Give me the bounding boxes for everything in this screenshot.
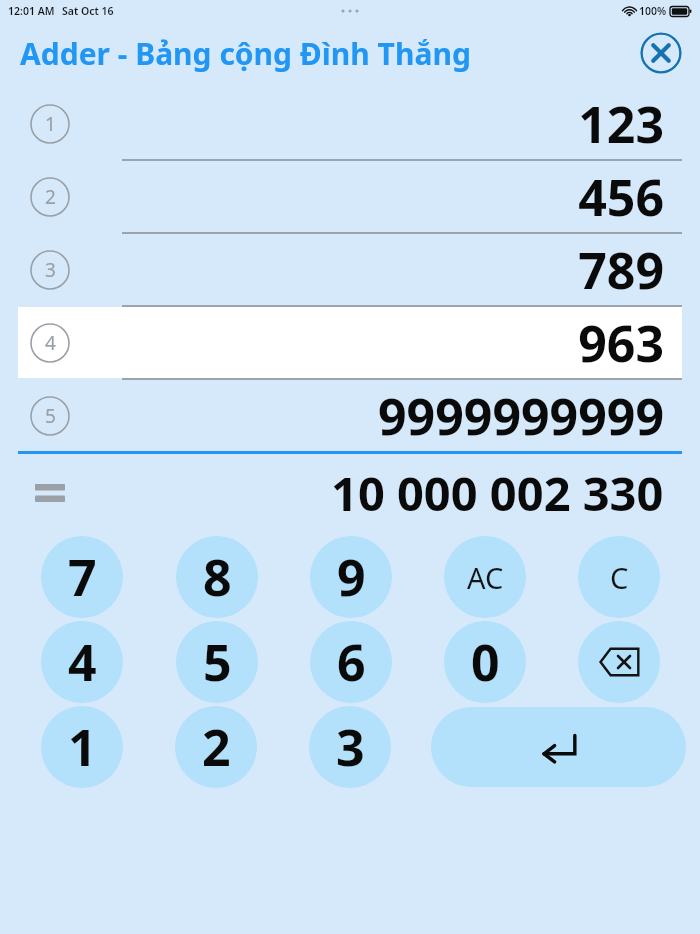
button[interactable]: 3 — [0, 234, 700, 305]
button[interactable]: 4 — [41, 621, 123, 703]
button[interactable]: 3 — [309, 706, 391, 788]
staticText: 4 — [45, 330, 56, 356]
staticText: 100% — [639, 4, 667, 18]
button[interactable]: 9 — [310, 536, 392, 618]
staticText: 3 — [336, 713, 365, 781]
staticText: 12:01 AM — [8, 4, 55, 18]
button[interactable]: 4 — [18, 307, 682, 378]
staticText: 3 — [45, 257, 56, 283]
staticText: 9999999999 — [378, 382, 664, 450]
staticText: 963 — [578, 309, 664, 377]
staticText: Adder - Bảng cộng Đình Thắng — [20, 33, 471, 74]
staticText: 8 — [203, 543, 232, 611]
staticText: AC — [467, 558, 504, 597]
staticText: 10 000 002 330 — [331, 461, 664, 525]
button[interactable]: Close — [640, 32, 682, 74]
staticText: 456 — [578, 163, 664, 231]
staticText: C — [610, 558, 629, 597]
button[interactable]: 10 000 002 330 — [0, 454, 700, 532]
button[interactable]: 5 — [176, 621, 258, 703]
staticText: 123 — [578, 90, 664, 158]
staticText: 0 — [471, 628, 500, 696]
staticText: 2 — [45, 184, 56, 210]
staticText: 9 — [337, 543, 366, 611]
button[interactable]: 5 — [0, 380, 700, 451]
button[interactable]: AC — [444, 536, 526, 618]
button[interactable]: Enter — [431, 707, 686, 787]
button[interactable]: 7 — [41, 536, 123, 618]
button[interactable]: 8 — [176, 536, 258, 618]
staticText: 5 — [203, 628, 232, 696]
staticText: 4 — [68, 628, 97, 696]
staticText: 1 — [45, 111, 56, 137]
staticText: 7 — [68, 543, 97, 611]
button[interactable]: 1 — [0, 88, 700, 159]
staticText: 789 — [578, 236, 664, 304]
button[interactable]: 0 — [444, 621, 526, 703]
button[interactable]: 6 — [310, 621, 392, 703]
staticText: 2 — [202, 713, 231, 781]
button[interactable]: 2 — [175, 706, 257, 788]
button[interactable]: 2 — [0, 161, 700, 232]
button[interactable]: C — [578, 536, 660, 618]
staticText: 6 — [337, 628, 366, 696]
button[interactable]: Backspace — [578, 621, 660, 703]
staticText: 1 — [68, 713, 97, 781]
staticText: 5 — [45, 403, 56, 429]
button[interactable]: 1 — [41, 706, 123, 788]
staticText: Sat Oct 16 — [62, 4, 114, 18]
